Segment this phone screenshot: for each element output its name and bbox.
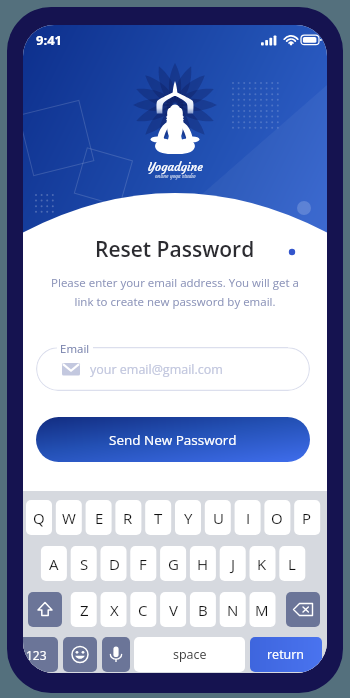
staticText: A	[49, 554, 59, 574]
button[interactable]: D	[101, 546, 127, 581]
button[interactable]: 123	[23, 637, 58, 672]
button[interactable]: G	[160, 546, 186, 581]
button[interactable]: K	[249, 546, 275, 581]
staticText: P	[302, 508, 312, 528]
staticText: X	[110, 600, 119, 620]
staticText: Z	[80, 600, 89, 620]
button[interactable]: B	[190, 592, 216, 627]
button[interactable]: J	[220, 546, 246, 581]
button[interactable]: Backspace	[286, 592, 320, 627]
staticText: N	[227, 600, 239, 620]
staticText: I	[246, 508, 251, 528]
staticText: D	[109, 554, 120, 574]
button[interactable]: M	[249, 592, 275, 627]
button[interactable]: your email@gmail.com	[36, 347, 310, 391]
staticText: L	[288, 554, 296, 574]
staticText: U	[213, 508, 224, 528]
button[interactable]: R	[115, 500, 141, 535]
staticText: G	[168, 554, 179, 574]
button[interactable]: Emoji	[63, 637, 97, 672]
staticText: 9:41	[36, 31, 63, 49]
staticText: Yogadgine	[148, 159, 203, 174]
button[interactable]: U	[205, 500, 231, 535]
staticText: online yoga studio	[155, 173, 196, 179]
staticText: H	[197, 554, 209, 574]
button[interactable]: A	[41, 546, 67, 581]
staticText: Y	[184, 508, 193, 528]
button[interactable]: H	[190, 546, 216, 581]
button[interactable]: return	[250, 637, 322, 672]
button[interactable]: P	[294, 500, 320, 535]
staticText: space	[173, 646, 207, 663]
button[interactable]: X	[101, 592, 127, 627]
button[interactable]: Shift	[28, 592, 62, 627]
button[interactable]: V	[160, 592, 186, 627]
button[interactable]: I	[235, 500, 261, 535]
staticText: M	[255, 600, 269, 620]
staticText: 123	[26, 647, 47, 663]
staticText: B	[198, 600, 208, 620]
staticText: V	[169, 600, 178, 620]
staticText: Q	[33, 508, 45, 528]
button[interactable]: E	[86, 500, 112, 535]
staticText: C	[138, 600, 148, 620]
button[interactable]: F	[130, 546, 156, 581]
button[interactable]: space	[134, 637, 245, 672]
button[interactable]: L	[279, 546, 305, 581]
button[interactable]: N	[220, 592, 246, 627]
staticText: E	[95, 508, 104, 528]
button[interactable]: T	[145, 500, 171, 535]
staticText: F	[139, 554, 147, 574]
button[interactable]: Send New Password	[36, 417, 310, 462]
staticText: T	[154, 508, 163, 528]
button[interactable]: O	[264, 500, 290, 535]
button[interactable]: Z	[71, 592, 97, 627]
staticText: Reset Password	[95, 235, 255, 264]
staticText: Email	[60, 341, 90, 357]
staticText: Send New Password	[109, 431, 237, 449]
staticText: your email@gmail.com	[90, 361, 223, 378]
button[interactable]: S	[71, 546, 97, 581]
button[interactable]: Voice input	[102, 637, 130, 672]
staticText: J	[231, 554, 236, 574]
button[interactable]: C	[130, 592, 156, 627]
button[interactable]: W	[56, 500, 82, 535]
button[interactable]: Q	[26, 500, 52, 535]
staticText: R	[123, 508, 133, 528]
staticText: S	[80, 554, 89, 574]
staticText: Please enter your email address. You wil…	[23, 275, 327, 309]
staticText: O	[271, 508, 283, 528]
button[interactable]: Y	[175, 500, 201, 535]
staticText: return	[267, 646, 305, 663]
staticText: K	[257, 554, 267, 574]
staticText: W	[62, 508, 76, 528]
